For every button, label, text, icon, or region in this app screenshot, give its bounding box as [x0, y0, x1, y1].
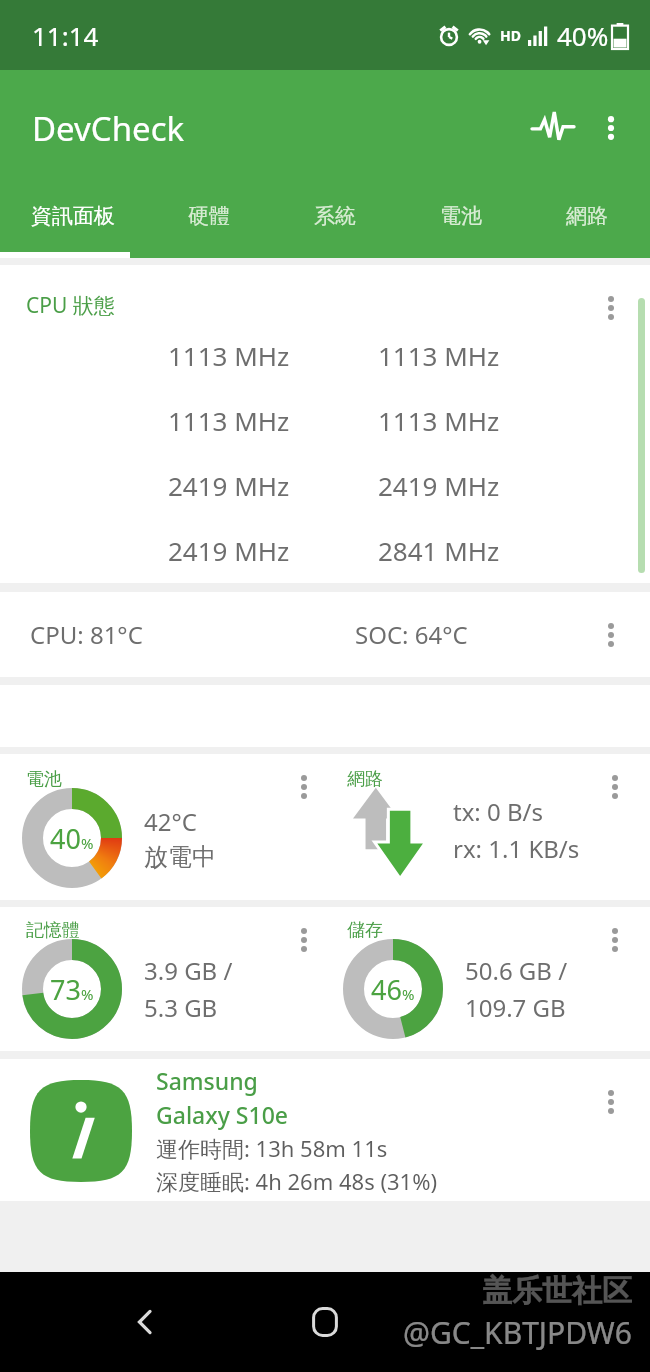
staticText: 73 [50, 971, 81, 1008]
staticText: 網路 [347, 768, 383, 791]
staticText: 電池 [440, 203, 482, 229]
button[interactable]: More options [598, 618, 624, 652]
button[interactable]: 網路 [524, 186, 650, 258]
staticText: CPU 狀態 [26, 291, 115, 320]
button[interactable]: Back [110, 1287, 180, 1357]
staticText: 40 [50, 820, 81, 857]
button[interactable]: More options [291, 923, 317, 957]
button[interactable]: 電池 [0, 754, 325, 900]
staticText: SOC: 64°C [355, 618, 468, 651]
button[interactable]: CPU 狀態 [0, 265, 650, 583]
staticText: 42°C [144, 805, 197, 838]
staticText: 2841 MHz [378, 533, 500, 568]
staticText: 5.3 GB [144, 991, 218, 1024]
staticText: 2419 MHz [168, 533, 290, 568]
button[interactable]: More options [602, 770, 628, 804]
staticText: 1113 MHz [168, 338, 290, 373]
button[interactable]: More options [598, 291, 624, 325]
staticText: % [402, 984, 415, 1004]
button[interactable]: 記憶體 [0, 907, 325, 1051]
staticText: tx: 0 B/s [453, 795, 544, 828]
button[interactable]: Samsung [0, 1059, 650, 1201]
staticText: 記憶體 [26, 919, 80, 942]
staticText: % [81, 833, 94, 853]
staticText: 儲存 [347, 919, 383, 942]
staticText: 運作時間: 13h 58m 11s [156, 1133, 388, 1163]
button[interactable]: 電池 [398, 186, 524, 258]
staticText: 深度睡眠: 4h 26m 48s (31%) [156, 1166, 438, 1196]
staticText: 109.7 GB [465, 991, 566, 1024]
button[interactable]: More options [598, 1085, 624, 1119]
button[interactable]: More options [602, 923, 628, 957]
staticText: @GC_KBTJPDW6 [403, 1312, 632, 1353]
staticText: DevCheck [32, 106, 185, 151]
staticText: 資訊面板 [31, 203, 115, 229]
staticText: 11:14 [32, 18, 99, 53]
staticText: 1113 MHz [168, 403, 290, 438]
button[interactable]: More options [291, 770, 317, 804]
button[interactable]: More options [582, 99, 640, 157]
staticText: HD [500, 26, 521, 45]
staticText: CPU: 81°C [30, 618, 143, 651]
staticText: 46 [371, 971, 402, 1008]
staticText: Samsung [156, 1065, 258, 1096]
staticText: % [81, 984, 94, 1004]
button[interactable]: CPU: 81°C [0, 592, 650, 677]
button[interactable]: Monitor [524, 99, 582, 157]
staticText: 系統 [314, 203, 356, 229]
staticText: 50.6 GB / [465, 954, 568, 987]
staticText: 3.9 GB / [144, 954, 233, 987]
staticText: rx: 1.1 KB/s [453, 832, 580, 865]
staticText: Galaxy S10e [156, 1099, 289, 1130]
staticText: 2419 MHz [378, 468, 500, 503]
staticText: 電池 [26, 768, 62, 791]
button[interactable]: 網路 [325, 754, 650, 900]
staticText: 放電中 [144, 842, 216, 872]
button[interactable]: 系統 [272, 186, 398, 258]
staticText: 2419 MHz [168, 468, 290, 503]
staticText: 網路 [566, 203, 608, 229]
staticText: 硬體 [188, 203, 230, 229]
button[interactable]: 硬體 [146, 186, 272, 258]
staticText: 40% [557, 18, 609, 53]
staticText: 1113 MHz [378, 403, 500, 438]
staticText: 1113 MHz [378, 338, 500, 373]
button[interactable]: 資訊面板 [0, 186, 146, 258]
button[interactable]: 儲存 [325, 907, 650, 1051]
staticText: 盖乐世社区 [482, 1272, 632, 1310]
button[interactable]: Home [290, 1287, 360, 1357]
